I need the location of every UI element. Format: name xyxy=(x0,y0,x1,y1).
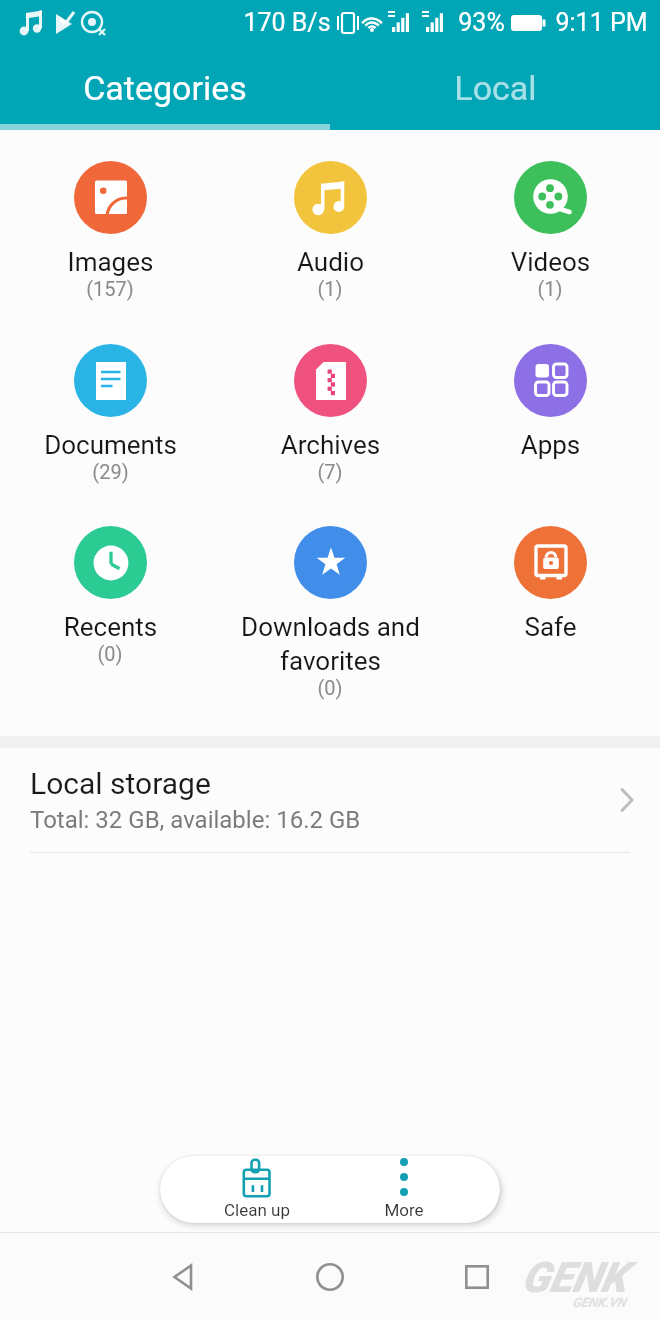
staticText: Apps xyxy=(448,430,653,460)
button[interactable]: Categories xyxy=(0,45,330,130)
staticText: Archives xyxy=(228,430,433,460)
button[interactable]: Videos xyxy=(440,161,660,300)
staticText: Clean up xyxy=(224,1200,290,1220)
staticText: Local storage xyxy=(30,766,211,801)
staticText: Documents xyxy=(8,430,213,460)
staticText: Local xyxy=(454,68,537,108)
button[interactable]: Clean up xyxy=(183,1156,330,1223)
staticText: Downloads and favorites xyxy=(228,612,433,676)
button[interactable]: Downloads and favorites xyxy=(220,526,440,699)
staticText: Recents xyxy=(8,612,213,642)
staticText: GENK.VN xyxy=(572,1295,626,1310)
button[interactable] xyxy=(316,1263,344,1291)
button[interactable]: Archives xyxy=(220,344,440,483)
staticText: Videos xyxy=(448,247,653,277)
staticText: 170 B/s xyxy=(243,8,331,37)
staticText: (1) xyxy=(317,277,343,300)
button[interactable]: More xyxy=(330,1156,477,1223)
staticText: Total: 32 GB, available: 16.2 GB xyxy=(30,806,361,834)
staticText: More xyxy=(384,1200,424,1220)
staticText: Safe xyxy=(448,612,653,642)
button[interactable]: Images xyxy=(0,161,220,300)
staticText: Images xyxy=(8,247,213,277)
button[interactable] xyxy=(465,1265,489,1289)
staticText: (0) xyxy=(317,676,343,699)
staticText: (7) xyxy=(317,460,343,483)
staticText: (0) xyxy=(97,642,123,665)
staticText: 93% xyxy=(458,8,505,37)
button[interactable]: Apps xyxy=(440,344,660,460)
staticText: Audio xyxy=(228,247,433,277)
staticText: (157) xyxy=(86,277,134,300)
button[interactable]: Safe xyxy=(440,526,660,642)
button[interactable]: Local xyxy=(330,45,660,130)
staticText: (1) xyxy=(537,277,563,300)
staticText: GENK xyxy=(521,1253,627,1302)
button[interactable]: Recents xyxy=(0,526,220,665)
staticText: (29) xyxy=(92,460,129,483)
button[interactable]: Documents xyxy=(0,344,220,483)
staticText: Categories xyxy=(83,68,247,108)
button[interactable]: Local storage xyxy=(0,748,660,852)
staticText: 9:11 PM xyxy=(555,8,648,37)
button[interactable]: Audio xyxy=(220,161,440,300)
button[interactable] xyxy=(172,1264,194,1290)
